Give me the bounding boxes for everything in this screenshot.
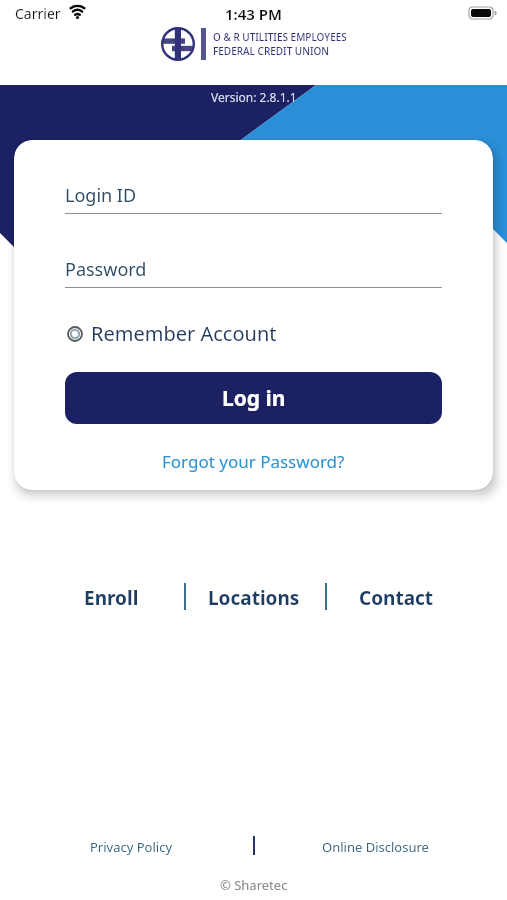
- staticText: Version: 2.8.1.1: [211, 89, 297, 105]
- staticText: Log in: [222, 384, 286, 413]
- staticText: Password: [65, 257, 147, 282]
- staticText: O & R UTILITIES EMPLOYEES: [213, 30, 347, 44]
- button[interactable]: Forgot your Password?: [162, 450, 345, 473]
- staticText: 1:43 PM: [225, 4, 282, 24]
- staticText: Locations: [208, 585, 300, 611]
- staticText: Enroll: [84, 585, 139, 611]
- staticText: Login ID: [65, 183, 137, 208]
- staticText: Carrier: [15, 4, 61, 23]
- staticText: © Sharetec: [220, 876, 288, 894]
- staticText: Forgot your Password?: [162, 450, 345, 473]
- staticText: Online Disclosure: [322, 838, 429, 856]
- button[interactable]: Password: [65, 257, 442, 288]
- button[interactable]: Enroll: [84, 585, 139, 611]
- staticText: FEDERAL CREDIT UNION: [213, 44, 330, 58]
- button[interactable]: Login ID: [65, 183, 442, 214]
- staticText: Contact: [359, 585, 434, 611]
- button[interactable]: Online Disclosure: [322, 838, 429, 856]
- button[interactable]: Contact: [359, 585, 434, 611]
- button[interactable]: Privacy Policy: [90, 838, 173, 856]
- button[interactable]: Locations: [208, 585, 300, 611]
- button[interactable]: Log in: [65, 372, 442, 424]
- button[interactable]: Remember Account: [67, 320, 277, 347]
- staticText: Privacy Policy: [90, 838, 173, 856]
- staticText: Remember Account: [91, 320, 277, 347]
